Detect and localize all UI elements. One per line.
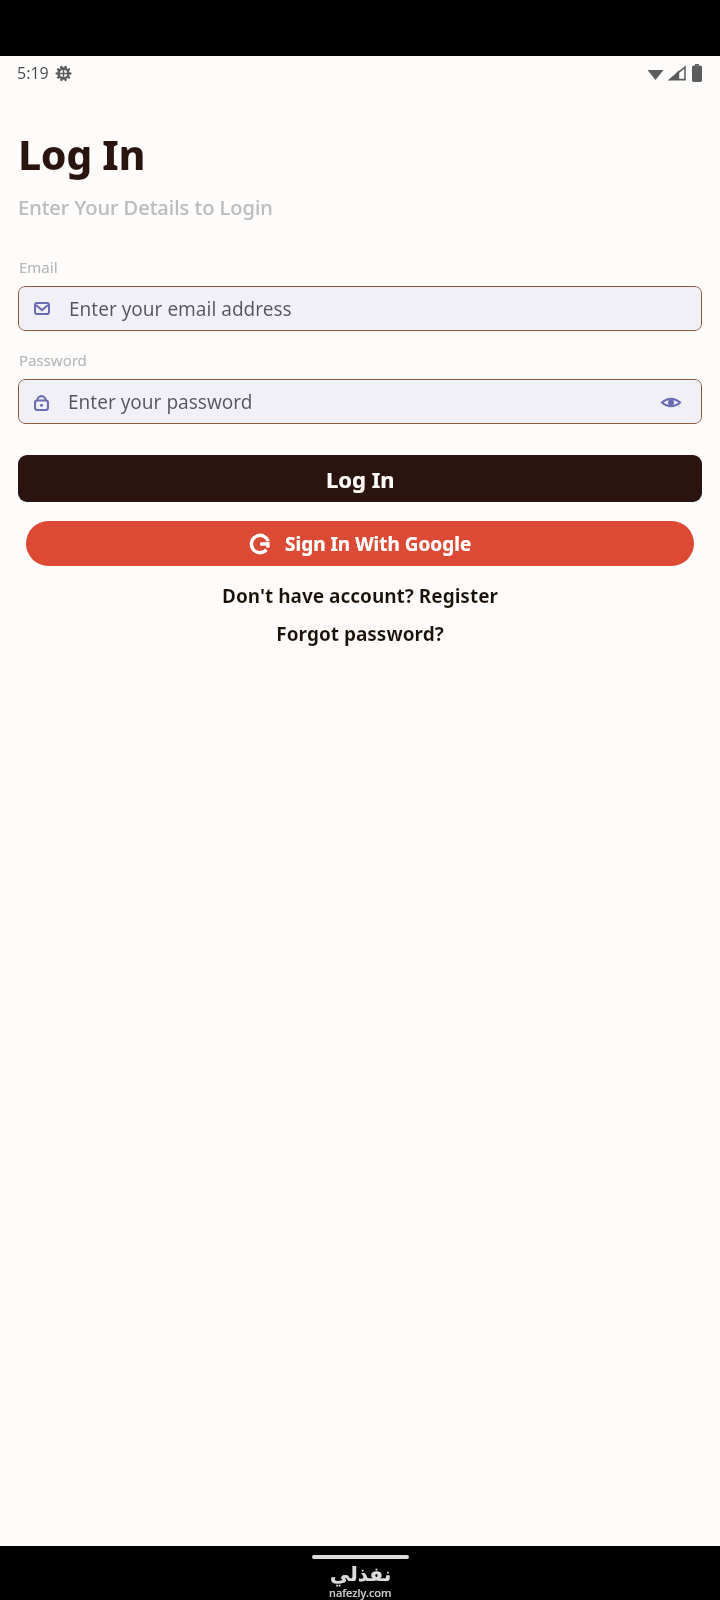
button[interactable]: Forgot password?	[0, 621, 720, 647]
staticText: Forgot password?	[276, 621, 444, 647]
staticText: Enter your email address	[69, 296, 292, 322]
button[interactable]: Show password	[656, 387, 686, 417]
button[interactable]: Don't have account? Register	[0, 583, 720, 609]
staticText: nafezly.com	[329, 1585, 392, 1600]
staticText: Sign In With Google	[285, 531, 472, 557]
button[interactable]: Enter your password	[18, 379, 702, 424]
staticText: Log In	[18, 126, 145, 182]
staticText: 5:19	[17, 62, 49, 84]
button[interactable]: Enter your email address	[18, 286, 702, 331]
button[interactable]: Log In	[18, 455, 702, 502]
staticText: Email	[19, 257, 58, 277]
button[interactable]: Sign In With Google	[26, 521, 694, 566]
staticText: Don't have account? Register	[222, 583, 498, 609]
staticText: Enter Your Details to Login	[18, 194, 273, 221]
staticText: Enter your password	[68, 389, 253, 415]
staticText: Password	[19, 350, 87, 370]
staticText: Log In	[326, 464, 395, 494]
staticText: نفذلي	[330, 1562, 392, 1585]
